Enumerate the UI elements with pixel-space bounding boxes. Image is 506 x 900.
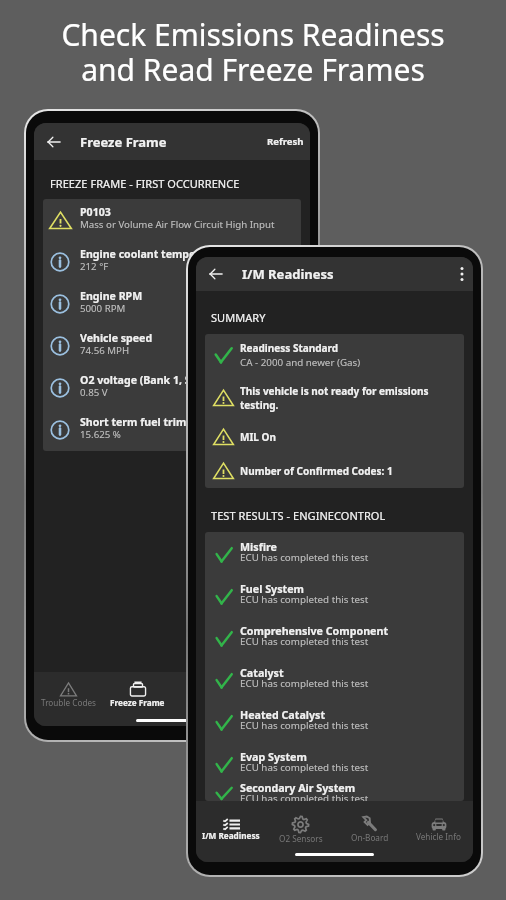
staticText: SUMMARY	[211, 310, 266, 325]
button[interactable]: Secondary Air System	[205, 786, 464, 801]
staticText: Engine RPM	[80, 289, 143, 303]
staticText: On-Board	[351, 832, 389, 843]
staticText: Comprehensive Component	[240, 624, 389, 639]
button[interactable]: O2 voltage (Bank 1, Sensor 1)	[43, 367, 301, 409]
staticText: ECU has completed this test	[240, 792, 369, 801]
staticText: ECU has completed this test	[240, 551, 369, 564]
button[interactable]: Back	[34, 123, 310, 160]
button[interactable]: O2 Sensors	[266, 809, 335, 850]
staticText: 74.56 MPH	[80, 344, 130, 357]
staticText: ECU has completed this test	[240, 719, 369, 732]
staticText: Fuel System	[240, 582, 304, 597]
staticText: Check Emissions Readiness and Read Freez…	[61, 14, 445, 90]
button[interactable]: Freeze Frame	[103, 674, 172, 715]
staticText: MIL On	[240, 430, 276, 444]
staticText: Short term fuel trim (Bank 1)	[80, 415, 232, 429]
staticText: I/M Readiness	[202, 830, 260, 841]
staticText: Engine coolant temperature	[80, 247, 229, 261]
staticText: O2 voltage (Bank 1, Sensor 1)	[80, 373, 233, 387]
button[interactable]: Comprehensive Component	[205, 618, 464, 660]
staticText: CA - 2000 and newer (Gas)	[240, 356, 361, 369]
staticText: ECU has completed this test	[240, 677, 369, 690]
staticText: Freeze Frame	[80, 133, 167, 151]
staticText: ECU has completed this test	[240, 593, 369, 606]
staticText: Vehicle Info	[416, 831, 461, 842]
button[interactable]: Trouble Codes	[34, 674, 103, 715]
button[interactable]: Number of Confirmed Codes: 1	[205, 453, 464, 488]
button[interactable]: More options	[454, 266, 470, 282]
staticText: Number of Confirmed Codes: 1	[240, 464, 393, 478]
button[interactable]: Heated Catalyst	[205, 702, 464, 744]
staticText: 212 °F	[80, 260, 109, 273]
button[interactable]: Misfire	[205, 534, 464, 576]
button[interactable]: Fuel System	[205, 576, 464, 618]
other: Back	[209, 267, 223, 281]
button[interactable]: Vehicle Info	[404, 809, 473, 850]
button[interactable]: Back	[196, 257, 473, 291]
staticText: O2 Sensors	[279, 833, 323, 844]
staticText: 5000 RPM	[80, 302, 126, 315]
staticText: Heated Catalyst	[240, 708, 326, 723]
staticText: 15.625 %	[80, 428, 121, 441]
button[interactable]: This vehicle is not ready for emissions …	[205, 376, 464, 420]
staticText: Evap System	[240, 750, 307, 765]
button[interactable]: Vehicle speed	[43, 325, 301, 367]
staticText: This vehicle is not ready for emissions …	[240, 384, 446, 412]
button[interactable]: Evap System	[205, 744, 464, 786]
button[interactable]: Refresh	[267, 135, 304, 148]
button[interactable]: P0103	[43, 199, 301, 241]
staticText: Misfire	[240, 540, 277, 555]
staticText: ECU has completed this test	[240, 635, 369, 648]
staticText: Readiness Standard	[240, 341, 339, 355]
button[interactable]: I/M Readiness	[196, 809, 266, 850]
button[interactable]: Short term fuel trim (Bank 1)	[43, 409, 301, 451]
staticText: Freeze Frame	[110, 697, 165, 708]
button[interactable]: On-Board	[335, 809, 404, 850]
staticText: Mass or Volume Air Flow Circuit High Inp…	[80, 218, 275, 231]
staticText: TEST RESULTS - ENGINECONTROL	[211, 508, 386, 523]
staticText: FREEZE FRAME - FIRST OCCURRENCE	[50, 176, 240, 191]
button[interactable]: Catalyst	[205, 660, 464, 702]
staticText: Trouble Codes	[41, 697, 96, 708]
button[interactable]: Engine coolant temperature	[43, 241, 301, 283]
staticText: 0.85 V	[80, 386, 108, 399]
other: Back	[47, 135, 61, 149]
staticText: I/M Readiness	[242, 265, 334, 283]
staticText: ECU has completed this test	[240, 761, 369, 774]
button[interactable]: Engine RPM	[43, 283, 301, 325]
staticText: Secondary Air System	[240, 781, 356, 796]
staticText: P0103	[80, 205, 111, 219]
staticText: Vehicle speed	[80, 331, 153, 345]
staticText: Catalyst	[240, 666, 284, 681]
button[interactable]: MIL On	[205, 420, 464, 453]
button[interactable]: Readiness Standard	[205, 334, 464, 376]
